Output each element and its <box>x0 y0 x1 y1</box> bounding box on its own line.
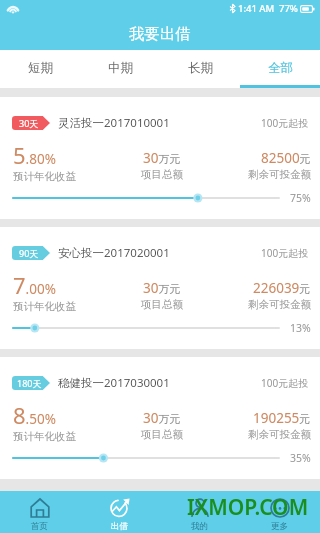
staticText: 100元起投 <box>261 116 309 130</box>
staticText: 更多 <box>271 521 289 532</box>
button[interactable]: 90天 <box>0 227 320 349</box>
staticText: 5.80% <box>13 140 56 170</box>
staticText: 8.50% <box>13 400 56 430</box>
staticText: 190255元 <box>253 409 311 427</box>
staticText: 100元起投 <box>261 376 309 390</box>
staticText: 30万元 <box>143 279 181 297</box>
staticText: 稳健投一2017030001 <box>58 375 170 391</box>
button[interactable]: 我的 <box>160 491 240 533</box>
staticText: 首页 <box>31 521 49 532</box>
staticText: 长期 <box>188 60 213 76</box>
staticText: 项目总额 <box>141 298 183 311</box>
staticText: 剩余可投金额 <box>248 168 311 181</box>
staticText: 35% <box>290 451 311 465</box>
button[interactable]: 30天 <box>0 97 320 219</box>
staticText: 82500元 <box>261 149 311 167</box>
staticText: 30天 <box>19 117 39 129</box>
staticText: 我的 <box>191 521 209 532</box>
button[interactable]: 出借 <box>80 491 160 533</box>
button[interactable]: 更多 <box>240 491 320 533</box>
staticText: 剩余可投金额 <box>248 298 311 311</box>
staticText: 75% <box>290 191 311 205</box>
staticText: 100元起投 <box>261 246 309 260</box>
button[interactable]: 短期 <box>0 50 80 88</box>
staticText: 预计年化收益 <box>13 300 76 313</box>
button[interactable]: 180天 <box>0 357 320 479</box>
staticText: 中期 <box>108 60 133 76</box>
button[interactable]: 首页 <box>0 491 80 533</box>
staticText: 灵活投一2017010001 <box>58 115 170 131</box>
staticText: 7.00% <box>13 270 56 300</box>
button[interactable]: 长期 <box>160 50 240 88</box>
staticText: 预计年化收益 <box>13 170 76 183</box>
staticText: IXMOP.COM <box>187 493 309 522</box>
staticText: 13% <box>290 321 311 335</box>
button[interactable]: 中期 <box>80 50 160 88</box>
staticText: 30万元 <box>143 409 181 427</box>
staticText: 剩余可投金额 <box>248 428 311 441</box>
staticText: 项目总额 <box>141 168 183 181</box>
staticText: 全部 <box>268 60 293 76</box>
staticText: 短期 <box>28 60 53 76</box>
staticText: 226039元 <box>253 279 311 297</box>
staticText: 项目总额 <box>141 428 183 441</box>
staticText: 90天 <box>19 247 39 259</box>
staticText: 1:41 AM <box>238 2 275 15</box>
staticText: 我要出借 <box>129 24 191 44</box>
staticText: 安心投一2017020001 <box>58 245 170 261</box>
button[interactable]: 全部 <box>240 50 320 88</box>
staticText: 180天 <box>17 377 42 389</box>
staticText: 30万元 <box>143 149 181 167</box>
staticText: 77% <box>279 2 298 15</box>
staticText: 出借 <box>111 521 129 532</box>
staticText: 预计年化收益 <box>13 430 76 443</box>
